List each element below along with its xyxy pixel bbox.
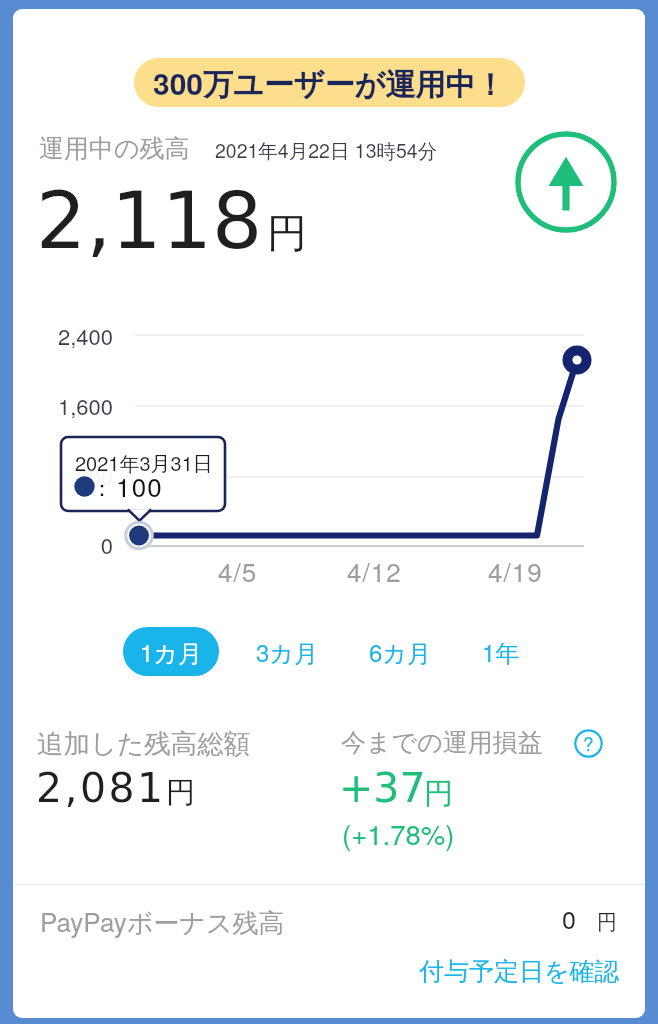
staticText: 運用中の残高 (39, 133, 190, 164)
staticText: 0 (100, 529, 113, 561)
staticText: ? (583, 729, 594, 756)
staticText: 2021年3月31日 (75, 448, 213, 477)
staticText: 今までの運用損益 (341, 727, 543, 758)
button[interactable]: 3カ月 (249, 627, 325, 676)
staticText: 800 (76, 460, 113, 492)
staticText: 0 (562, 900, 576, 936)
staticText: 円 (424, 775, 453, 812)
staticText: 2,118 (36, 175, 263, 267)
button[interactable]: 残高を追加する (515, 131, 617, 233)
staticText: 4/12 (347, 552, 402, 589)
button[interactable]: PayPayボーナス残高 (13, 893, 645, 941)
button[interactable]: 6カ月 (362, 627, 438, 676)
staticText: 4/5 (218, 552, 258, 589)
staticText: ： (91, 475, 113, 503)
button[interactable]: 1カ月 (123, 627, 219, 676)
staticText: 100 (116, 467, 163, 504)
button[interactable]: 300万ユーザーが運用中！ (134, 58, 525, 107)
staticText: 3カ月 (256, 634, 318, 669)
button[interactable]: 1年 (473, 627, 529, 676)
button[interactable]: 運用損益について (574, 729, 603, 758)
staticText: 4/19 (488, 552, 543, 589)
staticText: 追加した残高総額 (37, 727, 251, 760)
staticText: 300万ユーザーが運用中！ (153, 61, 506, 104)
staticText: (+1.78%) (342, 813, 455, 852)
staticText: 2,400 (57, 320, 113, 352)
staticText: 円 (267, 208, 307, 258)
staticText: 1年 (482, 634, 520, 669)
button[interactable]: 付与予定日を確認 (419, 956, 620, 987)
staticText: 円 (166, 774, 195, 811)
staticText: 1,600 (57, 390, 113, 422)
staticText: 2,081 (36, 764, 166, 812)
staticText: +37 (339, 764, 426, 812)
staticText: 6カ月 (369, 634, 431, 669)
staticText: PayPayボーナス残高 (40, 902, 285, 940)
staticText: 2021年4月22日 13時54分 (215, 136, 438, 164)
staticText: 1カ月 (140, 634, 202, 669)
staticText: 円 (597, 910, 617, 935)
